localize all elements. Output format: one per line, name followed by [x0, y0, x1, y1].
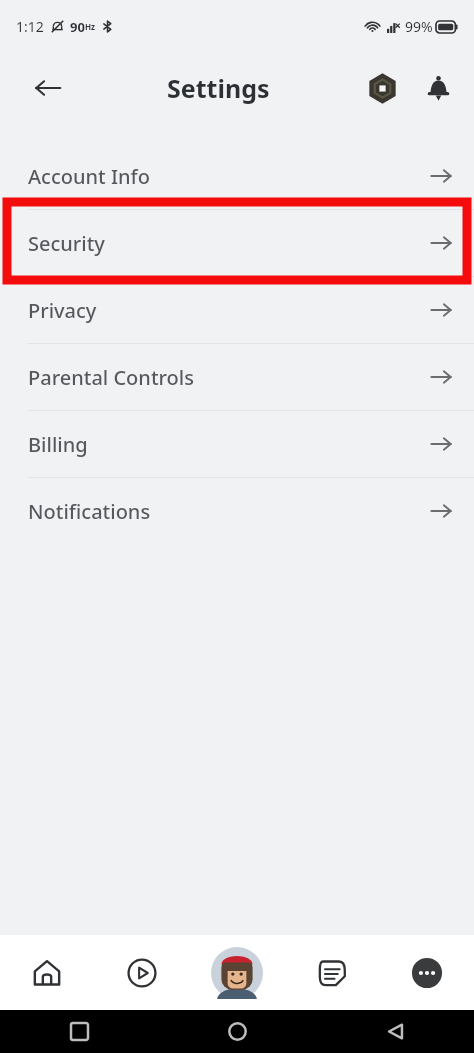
- staticText: Billing: [28, 431, 88, 458]
- staticText: Notifications: [28, 498, 151, 525]
- button[interactable]: Recents: [0, 1010, 158, 1053]
- button[interactable]: Account Info: [0, 143, 474, 209]
- button[interactable]: Home: [158, 1010, 316, 1053]
- button[interactable]: Discover: [94, 935, 189, 1010]
- button[interactable]: Notifications: [0, 478, 474, 544]
- button[interactable]: Notifications: [416, 66, 460, 110]
- staticText: 90: [70, 18, 85, 36]
- staticText: Privacy: [28, 297, 97, 324]
- button[interactable]: Privacy: [0, 277, 474, 343]
- staticText: 1:12: [16, 17, 44, 36]
- staticText: 99%: [405, 17, 433, 36]
- button[interactable]: Security: [0, 210, 474, 276]
- staticText: Account Info: [28, 163, 150, 190]
- button[interactable]: Back: [316, 1010, 474, 1053]
- button[interactable]: More: [379, 935, 474, 1010]
- button[interactable]: Avatar: [189, 935, 284, 1010]
- button[interactable]: Chat: [284, 935, 379, 1010]
- button[interactable]: Billing: [0, 411, 474, 477]
- staticText: Parental Controls: [28, 364, 194, 391]
- button[interactable]: Home: [0, 935, 94, 1010]
- button[interactable]: Robux: [360, 66, 404, 110]
- staticText: Hz: [85, 21, 96, 32]
- staticText: Settings: [167, 71, 270, 105]
- button[interactable]: Back: [26, 66, 70, 110]
- button[interactable]: Parental Controls: [0, 344, 474, 410]
- staticText: Security: [28, 230, 105, 257]
